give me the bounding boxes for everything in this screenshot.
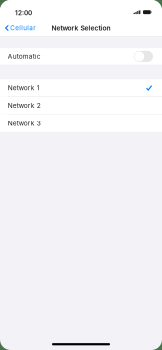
staticText: Network 3: [8, 119, 41, 127]
button[interactable]: Network 3: [0, 114, 162, 132]
staticText: Automatic: [8, 52, 41, 60]
button[interactable]: Network 1: [0, 79, 162, 96]
staticText: Network 1: [8, 84, 40, 92]
staticText: Network 2: [8, 101, 41, 109]
button[interactable]: Automatic: [0, 48, 162, 65]
button[interactable]: Network 2: [0, 97, 162, 114]
staticText: Network Selection: [51, 24, 110, 32]
button[interactable]: Cellular: [0, 20, 39, 36]
staticText: 12:00: [15, 9, 32, 17]
staticText: Cellular: [10, 24, 35, 32]
